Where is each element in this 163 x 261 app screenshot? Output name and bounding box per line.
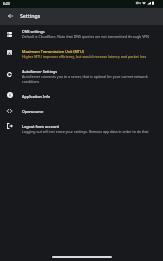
button[interactable]: Maximum Transmission Unit (MTU) bbox=[0, 45, 163, 65]
button[interactable]: DNS settings bbox=[0, 25, 163, 45]
staticText: AutoServer connects you to a server, tha… bbox=[22, 74, 152, 84]
button[interactable]: Back bbox=[0, 7, 20, 24]
button[interactable]: Opensource bbox=[0, 105, 163, 120]
staticText: Opensource bbox=[22, 109, 44, 114]
staticText: Default is Cloudflare. Note that DNS que… bbox=[22, 34, 150, 39]
staticText: 6:23 bbox=[3, 1, 10, 6]
staticText: Logging out will not erase your settings… bbox=[22, 129, 149, 134]
button[interactable]: Logout from account bbox=[0, 120, 163, 140]
staticText: Logout from account bbox=[22, 124, 59, 129]
staticText: DNS settings bbox=[22, 29, 45, 34]
staticText: Application Info bbox=[22, 94, 51, 99]
staticText: Maximum Transmission Unit (MTU) bbox=[22, 49, 84, 54]
staticText: AutoServer Settings bbox=[22, 69, 58, 74]
button[interactable]: Application Info bbox=[0, 90, 163, 105]
button[interactable]: AutoServer Settings bbox=[0, 65, 163, 90]
staticText: Higher MTU improves efficiency, but woul… bbox=[22, 54, 147, 59]
staticText: Settings bbox=[20, 12, 41, 19]
